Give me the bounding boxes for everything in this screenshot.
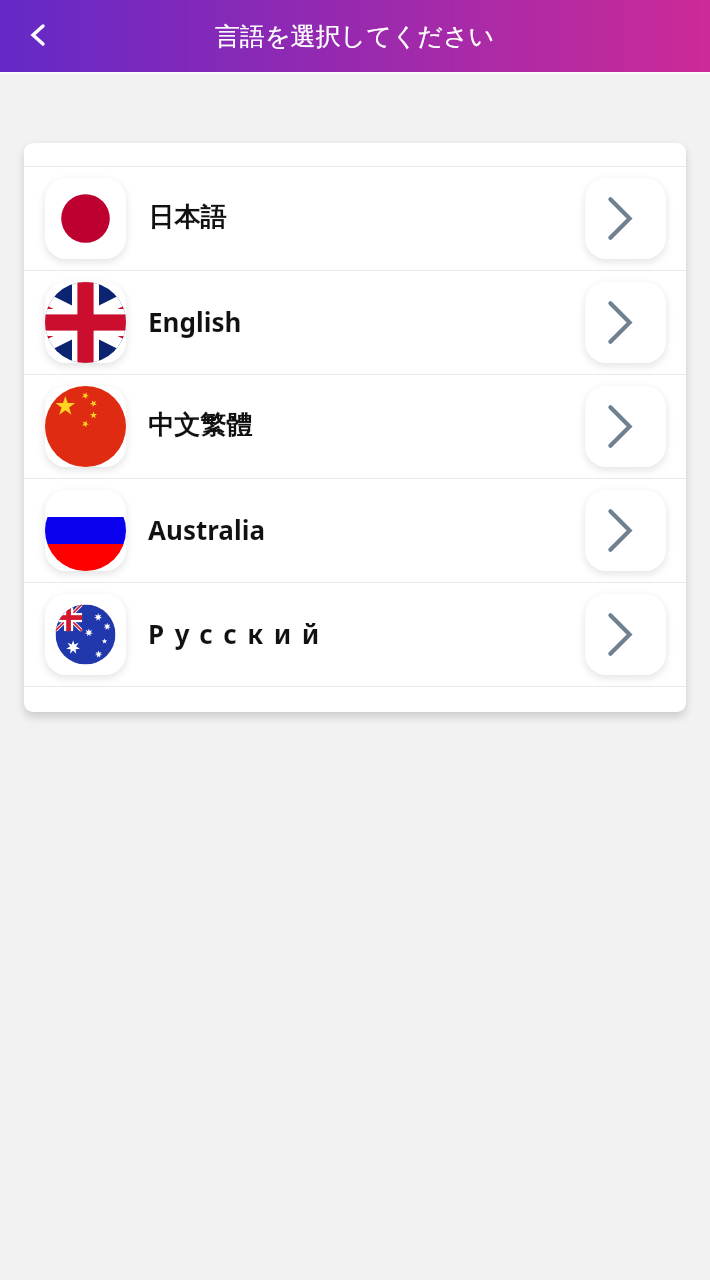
button[interactable]: English [24,271,686,374]
staticText: Australia [148,512,266,547]
staticText: 中文繁體 [148,409,252,442]
staticText: 言語を選択してください [215,21,495,52]
button[interactable]: Back [0,0,72,72]
button[interactable]: Select Australia [585,490,666,571]
staticText: 日本語 [148,201,226,234]
button[interactable]: Australia [24,479,686,582]
button[interactable]: 日本語 [24,167,686,270]
button[interactable]: Select 日本語 [585,178,666,259]
button[interactable]: Русский [24,583,686,686]
staticText: English [148,304,242,339]
button[interactable]: Select Русский [585,594,666,675]
staticText: Русский [148,616,330,651]
button[interactable]: Select English [585,282,666,363]
button[interactable]: Select 中文繁體 [585,386,666,467]
button[interactable]: 中文繁體 [24,375,686,478]
